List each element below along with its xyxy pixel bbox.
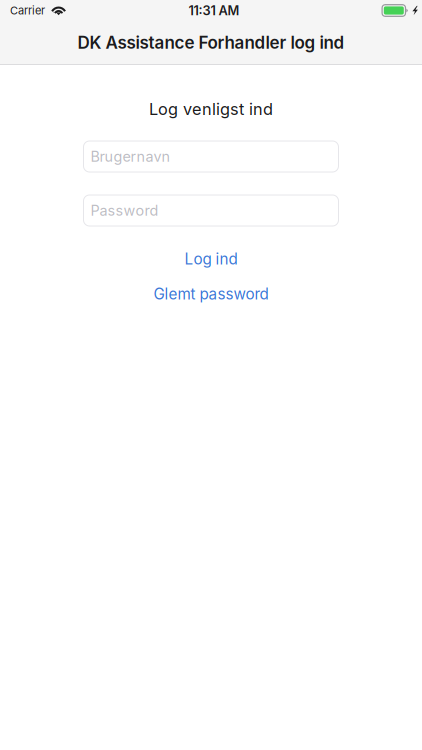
button[interactable]: Brugernavn bbox=[83, 141, 338, 172]
staticText: Password bbox=[90, 202, 158, 219]
staticText: Brugernavn bbox=[90, 148, 170, 165]
staticText: Log ind bbox=[184, 250, 237, 268]
staticText: Glemt password bbox=[153, 285, 268, 303]
staticText: Carrier bbox=[10, 4, 45, 17]
button[interactable]: Log ind bbox=[0, 250, 422, 268]
staticText: Log venligst ind bbox=[149, 99, 273, 119]
staticText: 11:31 AM bbox=[188, 3, 239, 18]
button[interactable]: Password bbox=[83, 195, 338, 226]
staticText: DK Assistance Forhandler log ind bbox=[77, 32, 344, 53]
button[interactable]: Glemt password bbox=[0, 285, 422, 303]
